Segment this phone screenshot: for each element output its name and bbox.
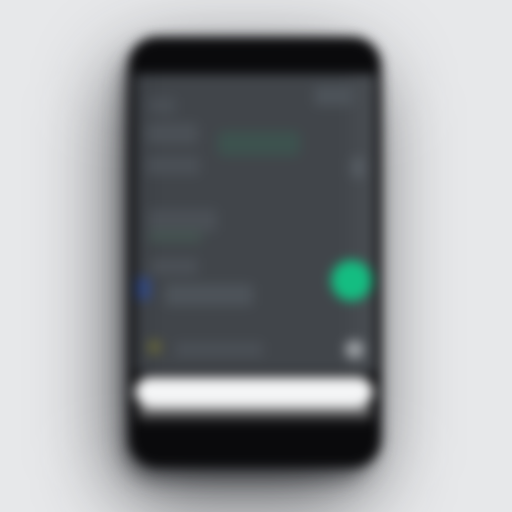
button[interactable] [139,204,329,248]
button[interactable] [139,152,319,180]
button[interactable] [139,252,319,282]
button[interactable] [135,274,325,308]
button[interactable]: Back [150,417,210,457]
button[interactable]: More options [305,82,363,110]
button[interactable]: Home [225,417,285,457]
button[interactable] [137,332,317,364]
button[interactable] [139,90,269,122]
button[interactable] [139,118,319,150]
button[interactable]: New message [331,260,372,301]
button[interactable]: Scroll to bottom [341,336,369,364]
button[interactable]: Message input [135,377,373,407]
button[interactable]: Recents [300,417,360,457]
